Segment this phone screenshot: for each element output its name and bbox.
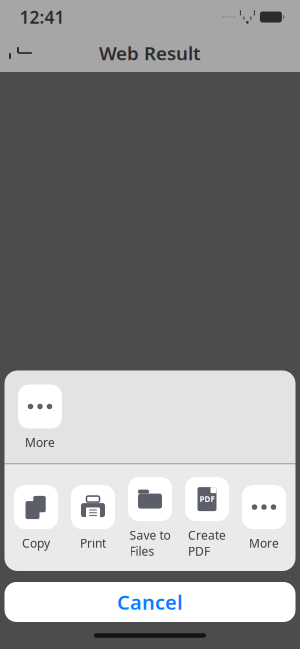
staticText: More xyxy=(249,535,279,551)
staticText: More xyxy=(25,434,55,450)
staticText: Save to Files xyxy=(129,527,170,559)
button[interactable]: PDF xyxy=(178,477,235,559)
staticText: Web Result xyxy=(99,41,201,65)
button[interactable]: Back xyxy=(0,34,43,72)
staticText: 12:41 xyxy=(19,5,64,28)
button[interactable]: More xyxy=(11,384,68,450)
staticText: Create PDF xyxy=(188,527,226,559)
button[interactable]: Cancel xyxy=(4,582,295,622)
button[interactable]: Save to Files xyxy=(121,477,178,559)
button[interactable]: Copy xyxy=(7,485,64,551)
staticText: Cancel xyxy=(117,589,183,615)
staticText: Print xyxy=(80,535,106,551)
button[interactable]: More xyxy=(235,485,292,551)
button[interactable]: Print xyxy=(64,485,121,551)
staticText: PDF xyxy=(199,494,214,504)
staticText: Copy xyxy=(22,535,50,551)
